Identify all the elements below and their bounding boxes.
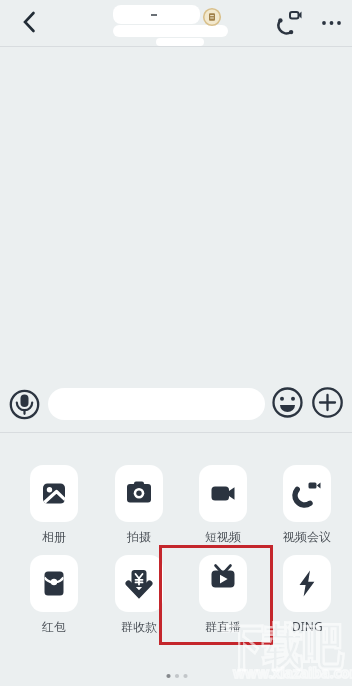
staticText: 下载吧 (222, 617, 342, 677)
staticText: 相册 (42, 529, 66, 544)
staticText: 群收款 (121, 619, 157, 634)
staticText: 短视频 (205, 529, 241, 544)
button[interactable] (115, 465, 163, 522)
staticText: 拍摄 (127, 529, 151, 544)
button[interactable] (283, 465, 331, 522)
button[interactable] (272, 6, 304, 40)
staticText: DING (292, 618, 323, 634)
staticText: 红包 (42, 619, 66, 634)
button[interactable] (30, 555, 78, 612)
button[interactable] (316, 8, 346, 38)
button[interactable] (12, 4, 48, 42)
button[interactable] (115, 555, 163, 612)
button[interactable] (30, 465, 78, 522)
button[interactable] (199, 555, 247, 612)
button[interactable] (272, 387, 303, 418)
button[interactable] (283, 555, 331, 612)
staticText: 群直播 (205, 619, 241, 634)
staticText: 视频会议 (283, 529, 331, 544)
button[interactable] (9, 389, 40, 420)
button[interactable] (199, 465, 247, 522)
button[interactable] (312, 387, 343, 418)
staticText: www.xiazaiba.com (233, 663, 352, 682)
button[interactable] (48, 388, 265, 420)
